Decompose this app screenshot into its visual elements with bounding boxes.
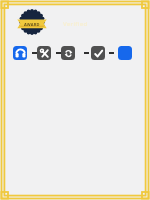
button[interactable]: Sync [61,46,75,60]
button[interactable]: Build [37,46,51,60]
button[interactable]: Done [91,46,105,60]
button[interactable]: Continue [118,46,132,60]
staticText: AWARD [24,22,40,27]
button[interactable]: Listen [13,46,27,60]
staticText: Verified [63,20,88,28]
